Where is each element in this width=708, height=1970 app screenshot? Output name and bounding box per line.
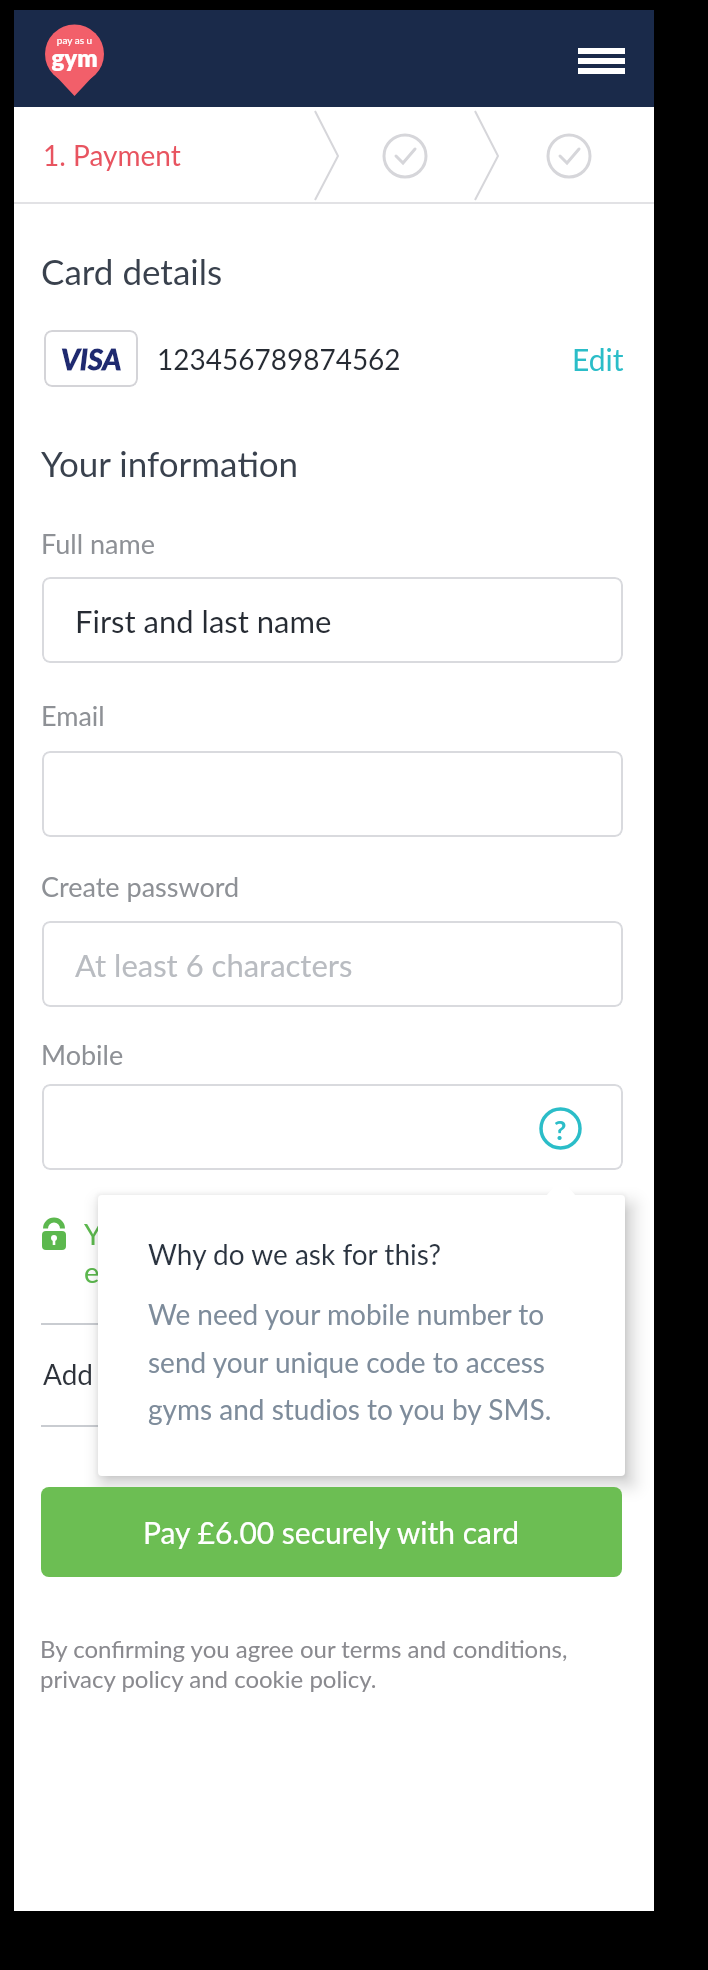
staticText: Pay £6.00 securely with card	[143, 1514, 520, 1550]
staticText: pay as u	[44, 34, 105, 46]
staticText: Edit	[572, 341, 624, 377]
staticText: VISA	[61, 341, 122, 376]
staticText: send your unique code to access	[148, 1345, 545, 1379]
staticText: Your information	[41, 442, 299, 484]
staticText: Y	[84, 1216, 103, 1251]
staticText: 1. Payment	[43, 138, 181, 172]
staticText: ?	[554, 1113, 567, 1145]
button[interactable]: At least 6 characters	[42, 921, 623, 1007]
button[interactable]: pay as u	[44, 25, 105, 97]
button[interactable]: First and last name	[42, 577, 623, 663]
staticText: privacy policy and cookie policy.	[40, 1664, 377, 1693]
staticText: Email	[41, 699, 105, 731]
button[interactable]	[42, 1084, 623, 1170]
button[interactable]: VISA	[44, 330, 138, 387]
button[interactable]	[574, 42, 628, 84]
staticText: gym	[44, 43, 105, 72]
staticText: Card details	[41, 250, 223, 292]
button[interactable]: Pay £6.00 securely with card	[41, 1487, 622, 1577]
button[interactable]: ?	[539, 1107, 582, 1150]
button[interactable]: Edit	[544, 330, 624, 387]
staticText: Full name	[41, 527, 155, 559]
staticText: We need your mobile number to	[148, 1297, 545, 1331]
staticText: First and last name	[75, 602, 332, 639]
staticText: e	[84, 1254, 100, 1289]
button[interactable]	[42, 751, 623, 837]
staticText: Mobile	[41, 1038, 124, 1070]
staticText: 123456789874562	[157, 342, 401, 376]
staticText: Add	[43, 1357, 94, 1391]
staticText: At least 6 characters	[75, 946, 353, 983]
staticText: Create password	[41, 870, 240, 902]
staticText: By confirming you agree our terms and co…	[40, 1634, 568, 1663]
staticText: gyms and studios to you by SMS.	[148, 1392, 552, 1426]
button[interactable]: 1. Payment	[43, 107, 181, 202]
staticText: Why do we ask for this?	[148, 1237, 442, 1271]
